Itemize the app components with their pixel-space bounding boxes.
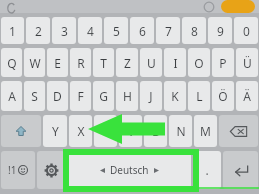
staticText: Ü [243, 55, 252, 71]
staticText: 1 [9, 23, 16, 39]
staticText: Y [52, 123, 59, 139]
staticText: V [127, 123, 135, 139]
staticText: N [176, 123, 186, 139]
staticText: X [77, 123, 85, 139]
button[interactable]: X [69, 115, 92, 147]
button[interactable]: . [193, 151, 221, 189]
button[interactable]: K [164, 81, 186, 111]
button[interactable]: H [116, 81, 138, 111]
staticText: G [99, 88, 108, 104]
button[interactable]: Symbols and emoji [1, 151, 35, 189]
staticText: F [77, 88, 84, 104]
button[interactable]: 9 [208, 17, 232, 44]
staticText: J [149, 88, 153, 104]
button[interactable]: Deutsch [67, 151, 191, 189]
button[interactable]: Y [43, 115, 67, 147]
staticText: 2 [35, 23, 42, 39]
button[interactable]: V [119, 115, 142, 147]
button[interactable]: S [24, 81, 45, 111]
staticText: D [53, 88, 62, 104]
staticText: R [77, 55, 85, 71]
staticText: T [100, 55, 107, 71]
staticText: H [123, 88, 132, 104]
staticText: !1 [8, 163, 17, 177]
button[interactable]: Ä [236, 81, 258, 111]
button[interactable]: U [140, 48, 162, 77]
staticText: K [171, 88, 179, 104]
staticText: 5 [113, 23, 120, 39]
button[interactable]: M [194, 115, 217, 147]
button[interactable]: R [70, 48, 91, 77]
staticText: S [31, 88, 38, 104]
staticText: B [152, 123, 160, 139]
staticText: O [194, 55, 204, 71]
staticText: P [219, 55, 227, 71]
button[interactable]: Shift [1, 115, 41, 147]
button[interactable]: J [140, 81, 162, 111]
staticText: M [200, 123, 211, 139]
staticText: C [102, 123, 110, 139]
button[interactable]: Attach [6, 1, 18, 13]
staticText: 7 [165, 23, 172, 39]
button[interactable]: Send [221, 0, 255, 13]
button[interactable]: Ü [236, 48, 258, 77]
button[interactable]: Backspace [219, 115, 258, 147]
staticText: 3 [61, 23, 68, 39]
button[interactable]: T [93, 48, 114, 77]
staticText: Ö [218, 88, 228, 104]
button[interactable]: 8 [182, 17, 206, 44]
button[interactable]: 1 [1, 17, 24, 44]
button[interactable]: 0 [234, 17, 258, 44]
button[interactable]: D [47, 81, 68, 111]
button[interactable]: I [164, 48, 186, 77]
button[interactable]: N [169, 115, 192, 147]
button[interactable]: B [144, 115, 167, 147]
staticText: E [54, 55, 61, 71]
button[interactable]: W [24, 48, 45, 77]
button[interactable]: Emoji [203, 1, 215, 13]
button[interactable]: Ö [212, 81, 234, 111]
staticText: . [205, 162, 209, 178]
staticText: 9 [217, 23, 224, 39]
button[interactable]: 3 [52, 17, 76, 44]
button[interactable]: Enter [223, 151, 258, 189]
button[interactable]: O [188, 48, 210, 77]
button[interactable]: F [70, 81, 91, 111]
staticText: 4 [87, 23, 94, 39]
button[interactable]: 5 [104, 17, 128, 44]
button[interactable]: L [188, 81, 210, 111]
staticText: Z [124, 55, 131, 71]
staticText: Q [7, 55, 17, 71]
button[interactable]: A [1, 81, 22, 111]
button[interactable]: Z [116, 48, 138, 77]
button[interactable]: P [212, 48, 234, 77]
button[interactable]: Q [1, 48, 22, 77]
staticText: 8 [191, 23, 198, 39]
button[interactable]: 7 [156, 17, 180, 44]
staticText: 6 [139, 23, 146, 39]
button[interactable]: G [93, 81, 114, 111]
button[interactable]: Settings [37, 151, 65, 189]
staticText: Deutsch [110, 163, 149, 177]
button[interactable]: E [47, 48, 68, 77]
staticText: I [173, 55, 178, 71]
button[interactable]: C [94, 115, 117, 147]
staticText: 0 [243, 23, 250, 39]
staticText: U [147, 55, 156, 71]
staticText: A [8, 88, 16, 104]
staticText: Ä [243, 88, 251, 104]
button[interactable]: 6 [130, 17, 154, 44]
staticText: W [29, 55, 41, 71]
button[interactable]: 2 [26, 17, 50, 44]
button[interactable]: 4 [78, 17, 102, 44]
staticText: L [196, 88, 203, 104]
